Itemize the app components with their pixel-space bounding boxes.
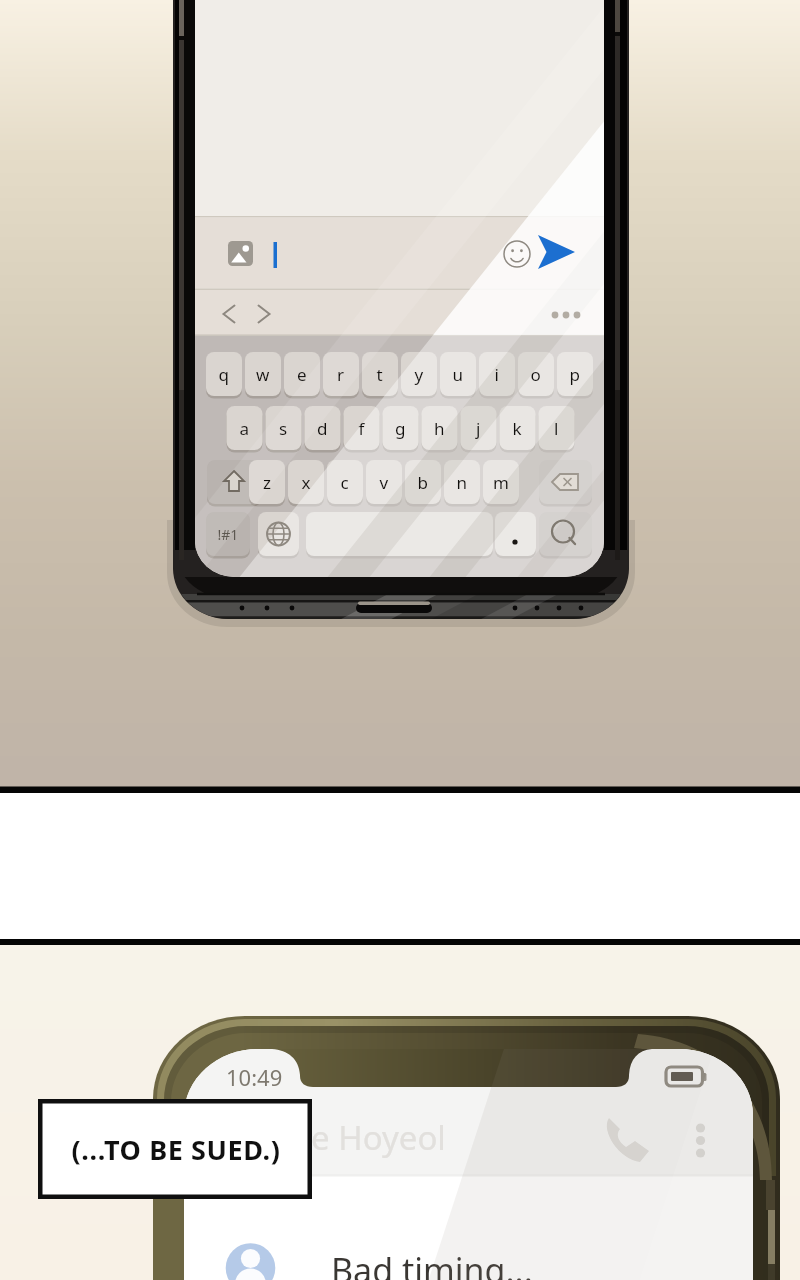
button[interactable] (0, 0, 800, 1280)
